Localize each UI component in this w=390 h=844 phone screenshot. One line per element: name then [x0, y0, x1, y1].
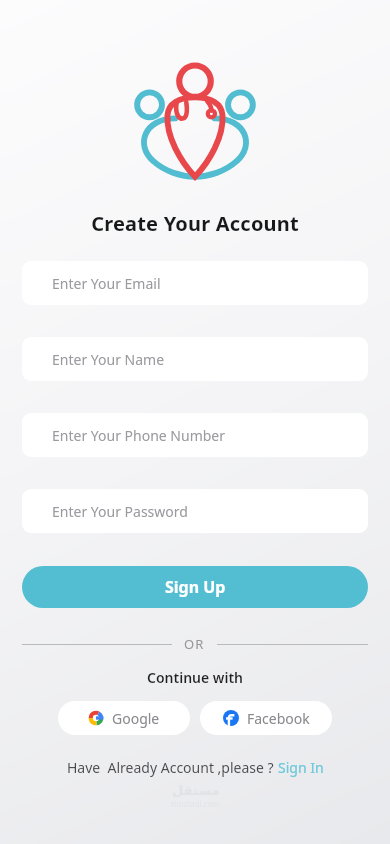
button[interactable]: Enter Your Email	[22, 261, 368, 305]
button[interactable]: Facebook	[200, 701, 332, 735]
staticText: Sign In	[278, 758, 324, 777]
button[interactable]: Enter Your Phone Number	[22, 413, 368, 457]
button[interactable]: Google	[58, 701, 190, 735]
staticText: Google	[112, 709, 160, 728]
staticText: Facebook	[247, 709, 310, 728]
staticText: Enter Your Password	[52, 502, 188, 521]
other: Facebook	[223, 710, 239, 726]
staticText: Enter Your Email	[52, 274, 161, 293]
staticText: Enter Your Phone Number	[52, 426, 226, 445]
button[interactable]: Sign In	[278, 758, 324, 777]
staticText: Sign Up	[165, 576, 226, 598]
staticText: Create Your Account	[0, 210, 390, 237]
staticText: Continue with	[0, 668, 390, 687]
button[interactable]: Enter Your Name	[22, 337, 368, 381]
staticText: OR	[184, 635, 205, 653]
staticText: مستقل	[172, 783, 220, 798]
button[interactable]: Enter Your Password	[22, 489, 368, 533]
staticText: Have Already Account ,please ?	[67, 758, 278, 777]
staticText: Enter Your Name	[52, 350, 165, 369]
button[interactable]: Sign Up	[22, 566, 368, 608]
other: Google	[88, 710, 104, 726]
